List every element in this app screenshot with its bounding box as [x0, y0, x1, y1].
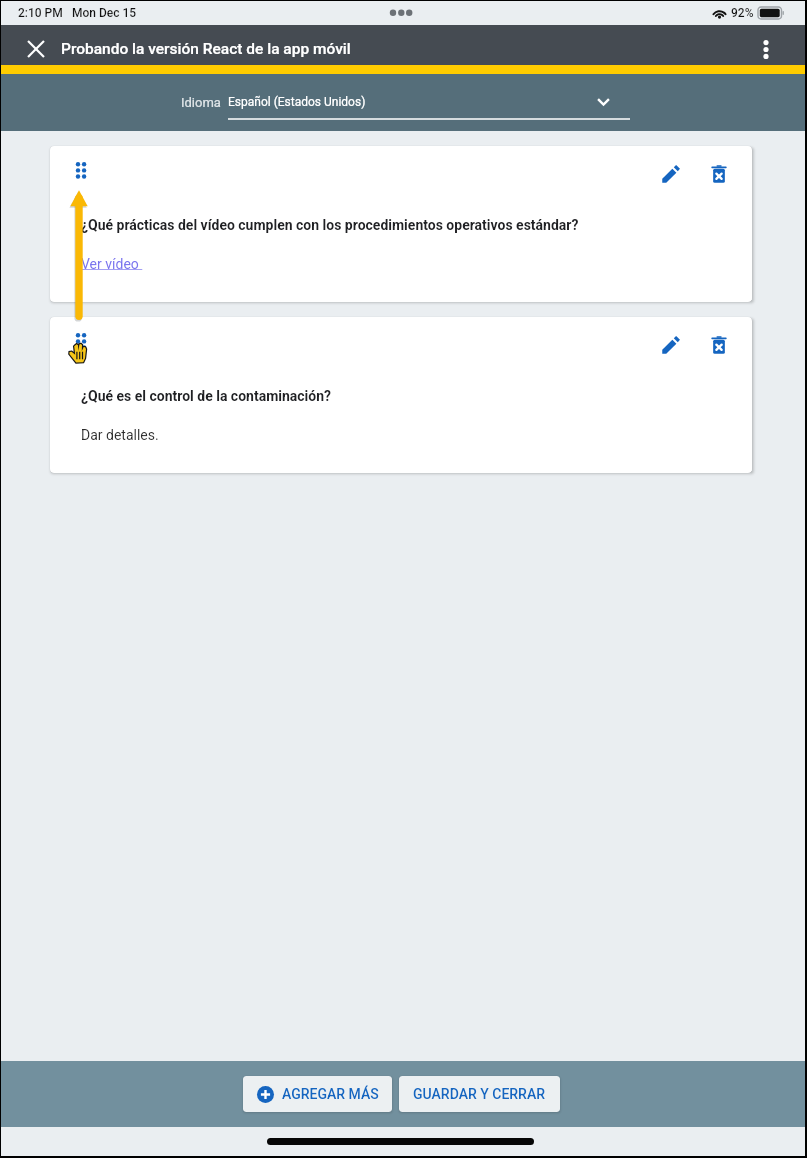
button[interactable]: Edit	[651, 154, 691, 194]
staticText: ¿Qué prácticas del vídeo cumplen con los…	[81, 217, 579, 233]
staticText: ¿Qué es el control de la contaminación?	[81, 388, 332, 404]
staticText: Mon Dec 15	[72, 6, 137, 20]
staticText: 92%	[731, 6, 754, 20]
button[interactable]: Language selector	[228, 74, 630, 120]
button[interactable]: Close	[1, 29, 55, 69]
button[interactable]: Reorder	[50, 317, 752, 473]
button[interactable]: Delete	[699, 325, 739, 365]
staticText: Ver vídeo	[81, 256, 143, 272]
staticText: AGREGAR MÁS	[282, 1086, 379, 1102]
button[interactable]: GUARDAR Y CERRAR	[399, 1076, 560, 1112]
staticText: Dar detalles.	[81, 427, 159, 443]
button[interactable]: Delete	[699, 154, 739, 194]
button[interactable]: Reorder	[69, 329, 93, 353]
button[interactable]: Reorder	[69, 158, 93, 182]
button[interactable]: More options	[742, 29, 790, 69]
staticText: Idioma	[181, 95, 221, 110]
staticText: GUARDAR Y CERRAR	[413, 1086, 546, 1102]
button[interactable]: Edit	[651, 325, 691, 365]
staticText: Probando la versión React de la app móvi…	[61, 40, 351, 58]
staticText: Español (Estados Unidos)	[228, 95, 366, 109]
staticText: 2:10 PM	[18, 6, 63, 20]
button[interactable]: AGREGAR MÁS	[243, 1076, 392, 1112]
button[interactable]: Reorder	[50, 146, 752, 302]
